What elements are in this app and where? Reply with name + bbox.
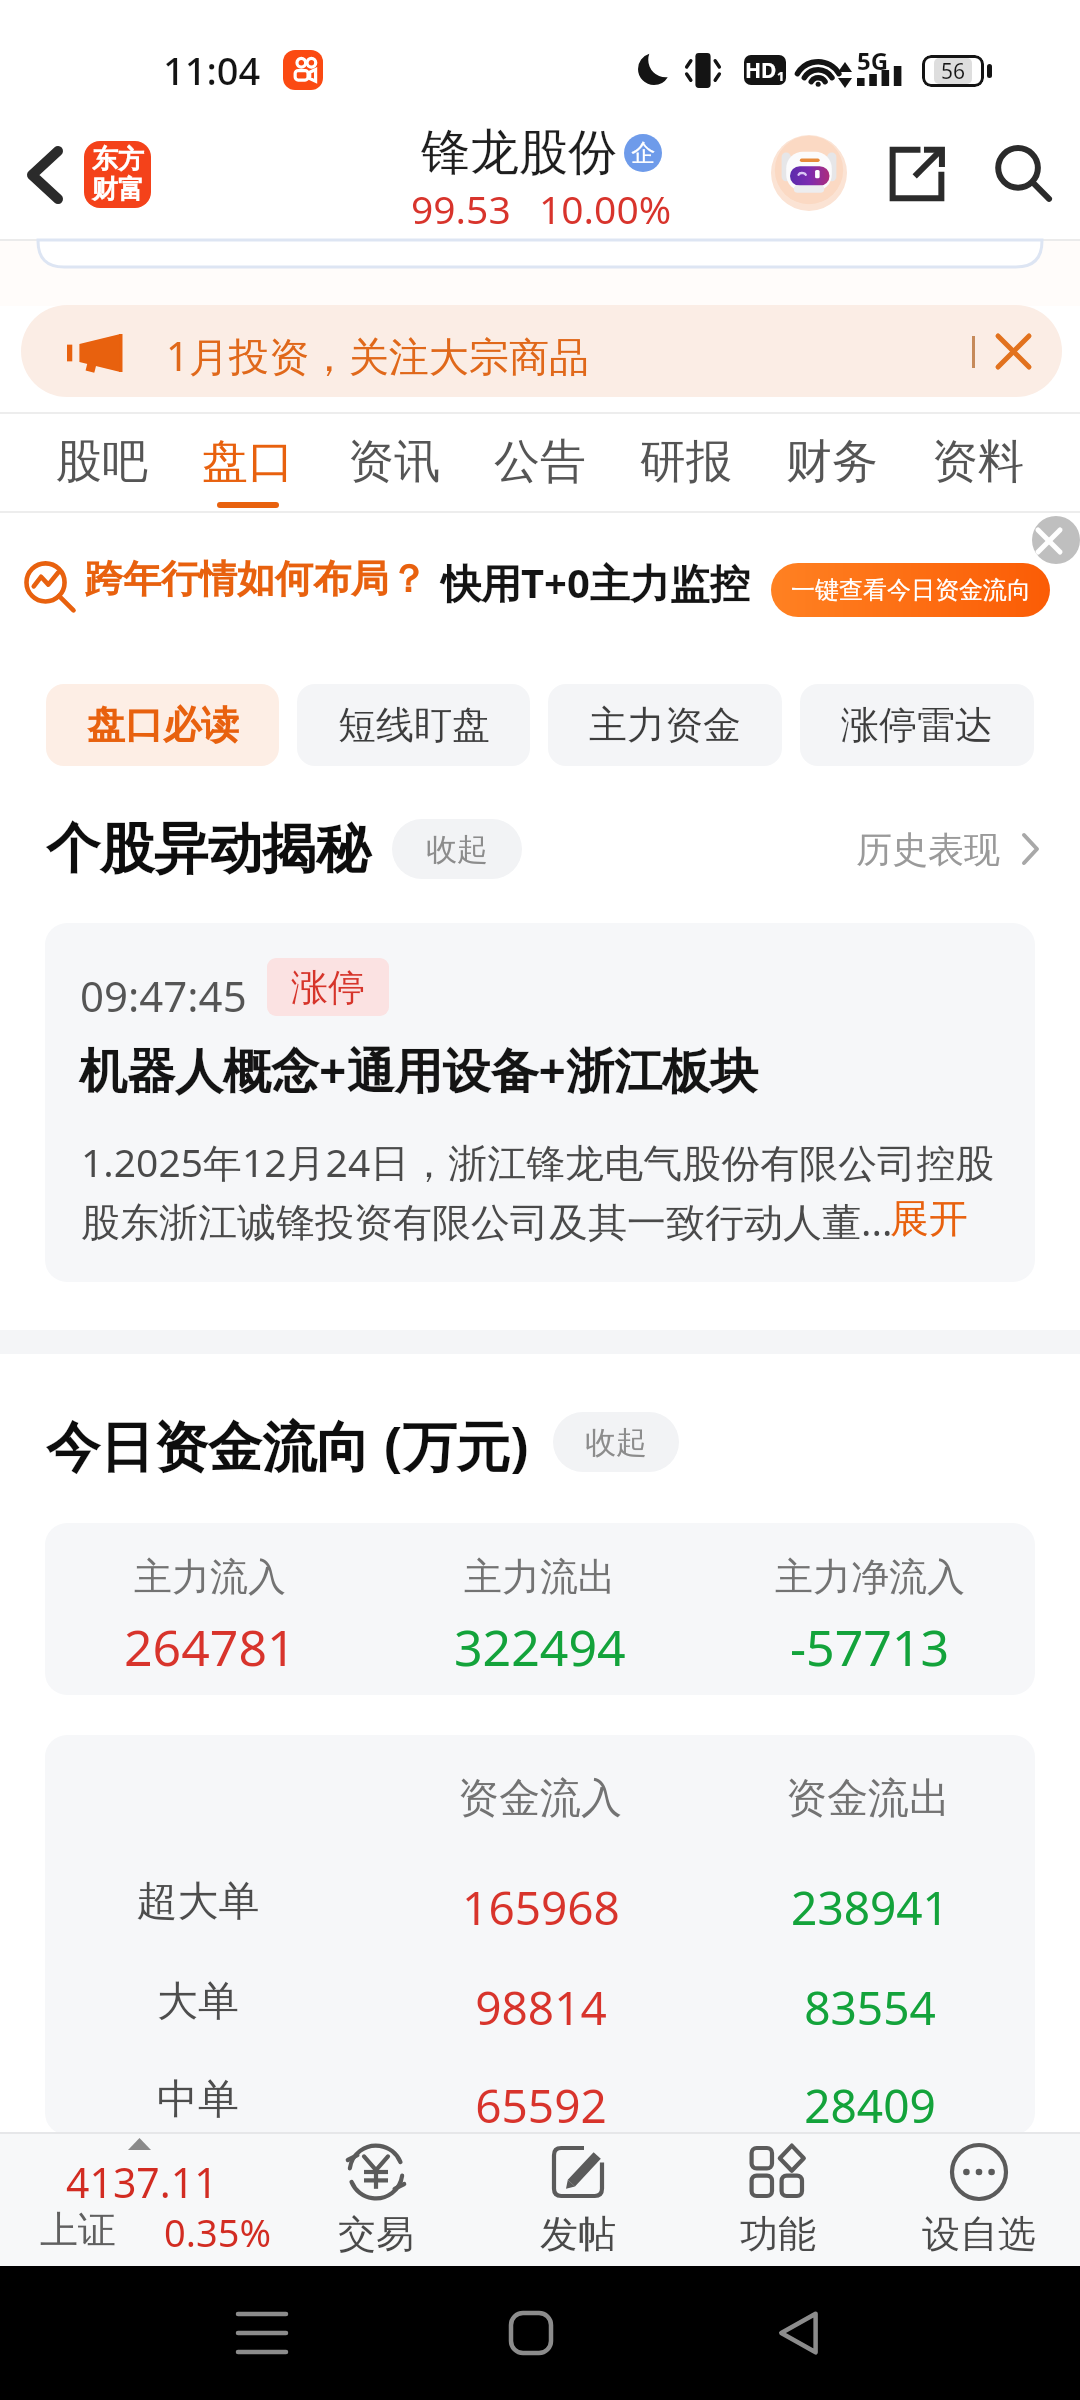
button[interactable]: 展开: [890, 1194, 968, 1243]
button[interactable]: Close ad: [1032, 516, 1080, 564]
staticText: 主力净流入: [775, 1553, 965, 1601]
staticText: 一键查看今日资金流向: [791, 575, 1031, 605]
button[interactable]: 收起: [553, 1412, 679, 1472]
staticText: 收起: [426, 830, 488, 869]
staticText: 短线盯盘: [338, 701, 490, 749]
button[interactable]: 4137.11: [0, 2132, 290, 2266]
staticText: 28409: [745, 2074, 995, 2130]
button[interactable]: 主力资金: [548, 684, 782, 766]
staticText: 设自选: [922, 2210, 1036, 2258]
staticText: 11:04: [163, 44, 261, 96]
staticText: 交易: [338, 2210, 414, 2258]
button[interactable]: 收起: [392, 819, 522, 879]
staticText: 238941: [745, 1876, 995, 1932]
staticText: 股吧: [56, 433, 148, 491]
button[interactable]: 发帖: [478, 2132, 678, 2266]
staticText: 99.53: [411, 182, 511, 235]
staticText: 公告: [494, 433, 586, 491]
button[interactable]: 资讯: [321, 412, 467, 513]
staticText: 主力流出: [464, 1553, 616, 1601]
button[interactable]: Back: [6, 136, 84, 214]
staticText: 10.00%: [539, 182, 672, 235]
staticText: 98814: [416, 1976, 666, 2032]
staticText: 今日资金流向 (万元): [46, 1408, 529, 1482]
staticText: 个股异动揭秘: [46, 815, 370, 883]
staticText: 中单: [73, 2074, 323, 2126]
staticText: 涨停: [291, 964, 365, 1011]
staticText: 0.35%: [164, 2206, 271, 2258]
button[interactable]: 1月投资，关注大宗商品: [21, 305, 1062, 397]
button[interactable]: East Money home: [84, 141, 151, 208]
button[interactable]: 一键查看今日资金流向: [771, 563, 1050, 617]
staticText: 1.2025年12月24日，浙江锋龙电气股份有限公司控股: [81, 1135, 995, 1188]
staticText: 264781: [124, 1613, 296, 1681]
staticText: 跨年行情如何布局？: [85, 555, 427, 603]
staticText: 1: [777, 67, 785, 85]
button[interactable]: 交易: [276, 2132, 476, 2266]
button[interactable]: AI assistant: [771, 135, 847, 211]
staticText: 盘口: [202, 433, 294, 491]
staticText: 资讯: [348, 433, 440, 491]
staticText: 资金流出: [708, 1773, 1028, 1825]
button[interactable]: 涨停雷达: [800, 684, 1034, 766]
staticText: 涨停雷达: [841, 701, 993, 749]
staticText: 主力资金: [589, 701, 741, 749]
staticText: 主力流入: [134, 1553, 286, 1601]
staticText: 研报: [640, 433, 732, 491]
staticText: 大单: [73, 1976, 323, 2028]
staticText: 资料: [932, 433, 1024, 491]
staticText: 股东浙江诚锋投资有限公司及其一致行动人董...: [81, 1194, 893, 1247]
staticText: 收起: [585, 1423, 647, 1462]
staticText: 东方 财富: [92, 143, 144, 206]
staticText: 历史表现: [856, 827, 1000, 872]
staticText: 发帖: [540, 2210, 616, 2258]
staticText: 65592: [416, 2074, 666, 2130]
staticText: 4137.11: [66, 2154, 218, 2210]
button[interactable]: 公告: [467, 412, 613, 513]
staticText: 5G: [857, 44, 889, 77]
staticText: HD: [745, 56, 777, 85]
button[interactable]: 功能: [678, 2132, 878, 2266]
button[interactable]: 研报: [613, 412, 759, 513]
button[interactable]: 短线盯盘: [297, 684, 530, 766]
staticText: 09:47:45: [80, 967, 247, 1024]
button[interactable]: 盘口必读: [46, 684, 279, 766]
staticText: 上证: [40, 2206, 116, 2254]
button[interactable]: 盘口: [175, 412, 321, 513]
button[interactable]: 资料: [905, 412, 1051, 513]
button[interactable]: Share: [878, 135, 956, 213]
button[interactable]: 股吧: [29, 412, 175, 513]
staticText: 超大单: [73, 1876, 323, 1928]
staticText: 锋龙股份: [421, 122, 617, 184]
staticText: 机器人概念+通用设备+浙江板块: [79, 1037, 758, 1103]
button[interactable]: 历史表现: [856, 822, 1039, 876]
staticText: 165968: [416, 1876, 666, 1932]
button[interactable]: Close notice: [985, 323, 1041, 379]
staticText: 322494: [454, 1613, 626, 1681]
staticText: 资金流入: [380, 1773, 700, 1825]
staticText: -57713: [790, 1613, 950, 1681]
staticText: 快用T+0主力监控: [441, 555, 750, 610]
button[interactable]: 财务: [759, 412, 905, 513]
staticText: 83554: [745, 1976, 995, 2032]
staticText: 盘口必读: [87, 701, 239, 749]
staticText: 1月投资，关注大宗商品: [166, 328, 589, 383]
staticText: 企: [631, 138, 655, 168]
staticText: 功能: [740, 2210, 816, 2258]
staticText: 56: [941, 57, 966, 86]
button[interactable]: 设自选: [879, 2132, 1079, 2266]
staticText: 财务: [786, 433, 878, 491]
button[interactable]: Search: [984, 135, 1062, 213]
button[interactable]: 09:47:45: [45, 923, 1035, 1282]
